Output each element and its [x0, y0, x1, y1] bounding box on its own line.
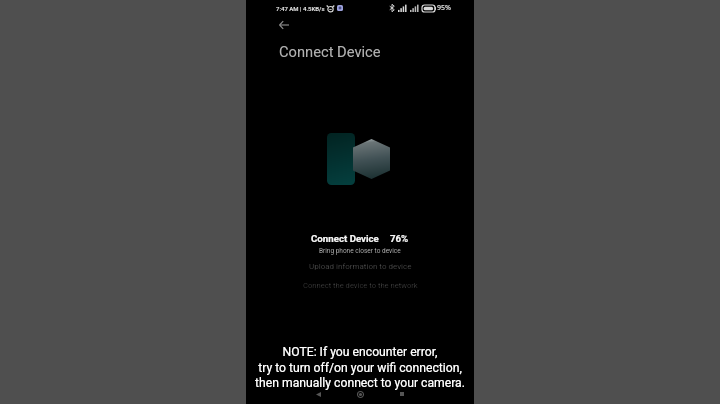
staticText: Connect Device — [311, 233, 379, 244]
staticText: 76% — [390, 233, 409, 244]
button[interactable]: Back — [272, 13, 296, 37]
staticText: NOTE: If you encounter error, try to tur… — [246, 345, 474, 390]
button[interactable]: Home — [352, 386, 368, 402]
button[interactable]: Recent apps — [394, 386, 410, 402]
staticText: Upload information to device — [309, 262, 412, 271]
staticText: 7:47 AM | 4.5KB/s — [276, 5, 325, 12]
staticText: Bring phone closer to device — [319, 247, 401, 255]
button[interactable]: Back — [310, 386, 326, 402]
staticText: Connect Device — [279, 43, 381, 60]
staticText: 95% — [437, 3, 451, 13]
staticText: Connect the device to the network — [303, 281, 418, 290]
